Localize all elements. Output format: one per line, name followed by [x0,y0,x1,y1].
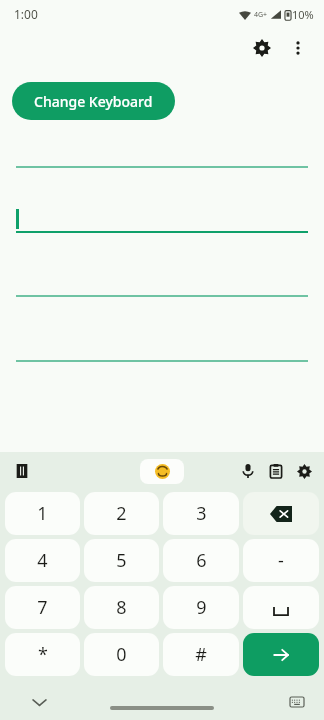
button[interactable]: Space [243,586,319,629]
staticText: * [38,642,48,667]
staticText: 1 [37,501,48,526]
button[interactable]: Emoji [140,459,184,484]
staticText: 8 [116,595,127,620]
button[interactable]: 4 [5,539,80,582]
button[interactable]: # [163,633,239,676]
button[interactable]: Clipboard [262,457,290,485]
button[interactable]: 2 [84,492,159,535]
button[interactable]: Backspace [243,492,319,535]
button[interactable]: - [243,539,319,582]
staticText: 4 [37,548,48,573]
staticText: 10% [292,7,314,22]
button[interactable]: 0 [84,633,159,676]
staticText: Change Keyboard [34,92,153,111]
staticText: 3 [196,501,207,526]
staticText: 9 [196,595,207,620]
staticText: 0 [116,642,127,667]
button[interactable]: * [5,633,80,676]
staticText: 1:00 [14,6,38,22]
button[interactable]: More options [280,30,316,66]
staticText: 6 [196,548,207,573]
button[interactable]: Change Keyboard [12,82,175,120]
staticText: # [195,642,207,667]
staticText: 2 [116,501,127,526]
button[interactable]: Switch input method [284,689,310,715]
button[interactable]: 5 [84,539,159,582]
button[interactable]: Settings [244,30,280,66]
button[interactable]: 1 [5,492,80,535]
button[interactable]: 7 [5,586,80,629]
button[interactable]: Enter [243,633,319,676]
staticText: - [278,548,284,573]
button[interactable]: Keyboard settings [290,457,318,485]
staticText: 7 [37,595,48,620]
button[interactable]: Hide keyboard [26,689,52,715]
button[interactable]: Voice input [234,457,262,485]
staticText: 4G+ [254,10,268,20]
button[interactable]: Clipboard history [8,457,36,485]
button[interactable]: 8 [84,586,159,629]
button[interactable]: 6 [163,539,239,582]
button[interactable]: 9 [163,586,239,629]
button[interactable]: 3 [163,492,239,535]
staticText: 5 [116,548,127,573]
